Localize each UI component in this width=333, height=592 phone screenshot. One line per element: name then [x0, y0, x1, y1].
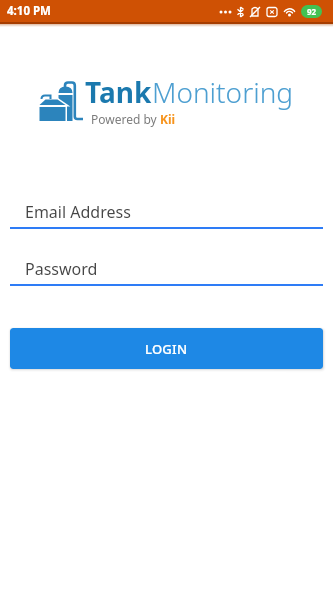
staticText: 4:10 PM [7, 3, 51, 19]
staticText: LOGIN [145, 340, 188, 358]
staticText: Password [25, 258, 98, 280]
button[interactable]: Password [10, 258, 323, 286]
staticText: Email Address [25, 201, 131, 223]
button[interactable]: LOGIN [10, 328, 323, 369]
staticText: Monitoring [152, 73, 294, 111]
staticText: Tank [85, 73, 152, 111]
button[interactable]: Email Address [10, 201, 323, 229]
staticText: Kii [160, 111, 176, 127]
staticText: Powered by [91, 111, 160, 127]
staticText: 92 [307, 6, 317, 17]
